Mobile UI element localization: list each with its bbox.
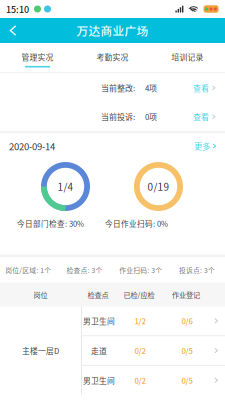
button[interactable]: 查看 [193, 111, 219, 122]
staticText: 岗位 [33, 289, 47, 300]
staticText: 4项 [145, 82, 157, 94]
staticText: 0/2 [134, 375, 145, 386]
staticText: 0/6 [181, 315, 192, 326]
staticText: 主楼一层D [22, 345, 59, 356]
staticText: 检查点 [87, 289, 108, 300]
staticText: 0/19 [147, 179, 169, 194]
staticText: 15:10 [6, 2, 29, 15]
staticText: 投诉点: 3个 [179, 265, 215, 275]
staticText: 更多 [194, 140, 210, 152]
button[interactable]: Back [0, 18, 26, 43]
button[interactable]: 管理实况 [0, 43, 75, 72]
staticText: 0/5 [181, 375, 192, 386]
staticText: 男卫生间 [83, 315, 115, 326]
staticText: 作业扫码: 3个 [119, 265, 162, 275]
staticText: 0/2 [134, 345, 145, 356]
staticText: 考勤实况 [96, 51, 128, 62]
staticText: 万达商业广场 [76, 22, 148, 39]
staticText: 走道 [91, 345, 107, 356]
staticText: 管理实况 [21, 51, 53, 62]
button[interactable]: 考勤实况 [75, 43, 150, 72]
staticText: 查看 [193, 82, 209, 94]
staticText: 查看 [193, 111, 209, 122]
button[interactable]: 男卫生间 [82, 306, 225, 335]
staticText: 男卫生间 [83, 375, 115, 386]
staticText: 作业登记 [172, 289, 200, 300]
staticText: 培训记录 [171, 51, 203, 62]
staticText: 当前整改: [101, 82, 135, 94]
staticText: 0/5 [181, 345, 192, 356]
staticText: 岗位/区域: 1个 [5, 265, 51, 275]
staticText: 2020-09-14 [9, 139, 55, 153]
button[interactable]: 走道 [82, 336, 225, 365]
staticText: 今日部门检查: 30% [17, 218, 84, 229]
staticText: 当前投诉: [101, 111, 135, 122]
staticText: 1/2 [134, 315, 145, 326]
button[interactable]: 男卫生间 [82, 366, 225, 395]
staticText: 今日作业扫码: 0% [105, 218, 168, 229]
staticText: 1/4 [57, 179, 73, 194]
button[interactable]: 更多 [194, 140, 216, 152]
staticText: 0项 [145, 111, 157, 122]
button[interactable]: 查看 [193, 82, 219, 94]
button[interactable]: 培训记录 [150, 43, 225, 72]
staticText: 已检/应检 [123, 289, 154, 300]
staticText: 检查点: 3个 [66, 265, 102, 275]
